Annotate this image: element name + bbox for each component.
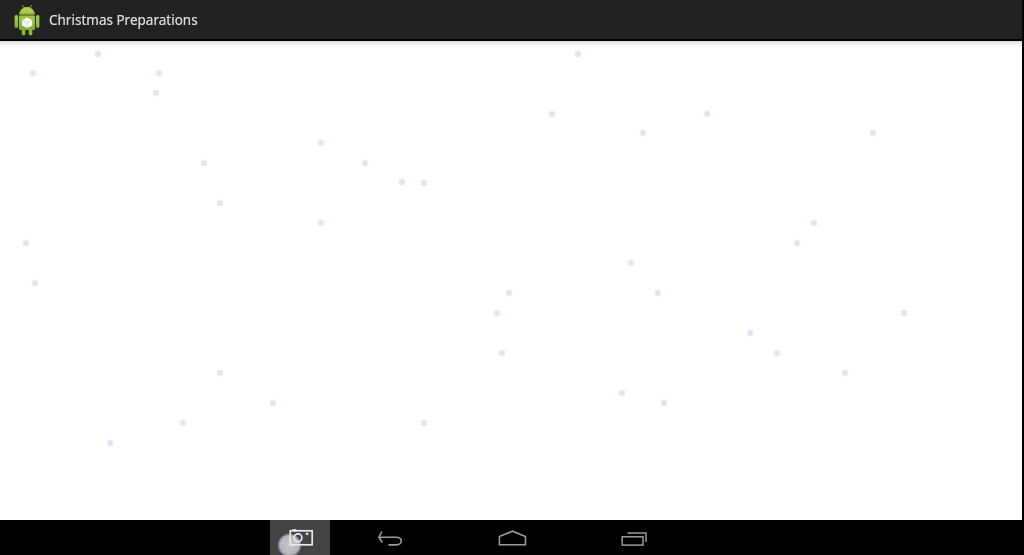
staticText: Christmas Preparations bbox=[49, 11, 198, 29]
button[interactable]: Screenshot bbox=[270, 520, 330, 555]
button[interactable]: Back bbox=[360, 520, 420, 555]
button[interactable]: Home bbox=[482, 520, 542, 555]
button[interactable]: Recents bbox=[602, 520, 662, 555]
